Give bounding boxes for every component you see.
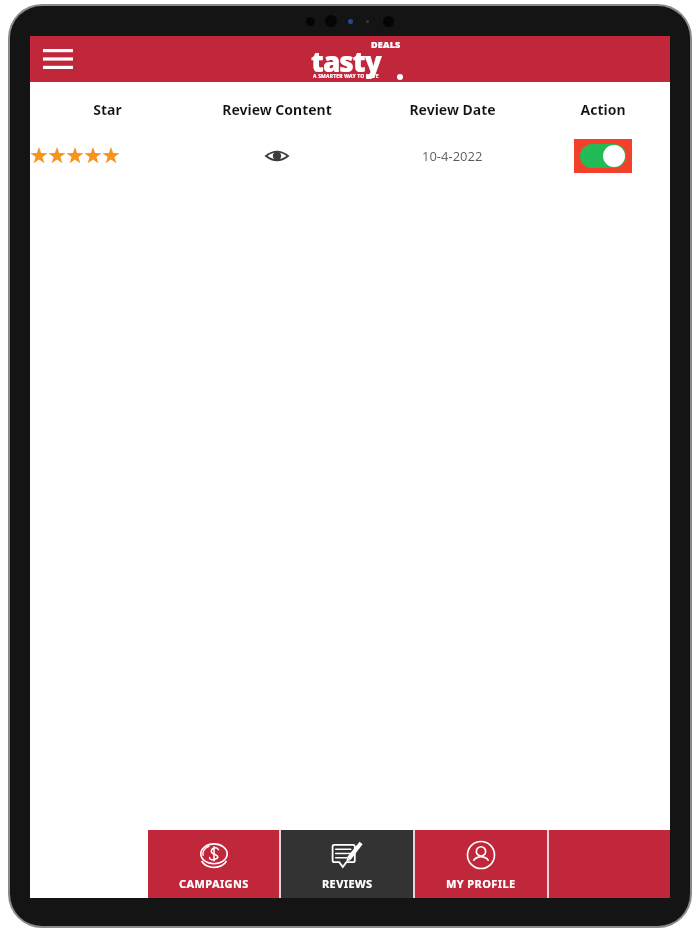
staticText: REVIEWS (322, 876, 373, 891)
button[interactable]: View review content (260, 139, 294, 173)
staticText: A SMARTER WAY TO SAVE (313, 73, 379, 80)
button[interactable]: MY PROFILE (415, 830, 547, 898)
staticText: Action (580, 100, 626, 119)
staticText: DEALS (371, 38, 401, 50)
staticText: CAMPAIGNS (179, 876, 249, 891)
staticText: MY PROFILE (446, 876, 516, 891)
staticText: Star (93, 100, 122, 119)
staticText: 10-4-2022 (422, 147, 483, 165)
staticText: tasty (311, 42, 381, 80)
button[interactable]: Toggle review visibility, on (574, 139, 632, 173)
staticText: Review Content (222, 100, 332, 119)
staticText: Review Date (409, 100, 496, 119)
button[interactable]: CAMPAIGNS (148, 830, 279, 898)
button[interactable]: REVIEWS (281, 830, 413, 898)
button[interactable]: Open navigation menu (38, 39, 78, 79)
